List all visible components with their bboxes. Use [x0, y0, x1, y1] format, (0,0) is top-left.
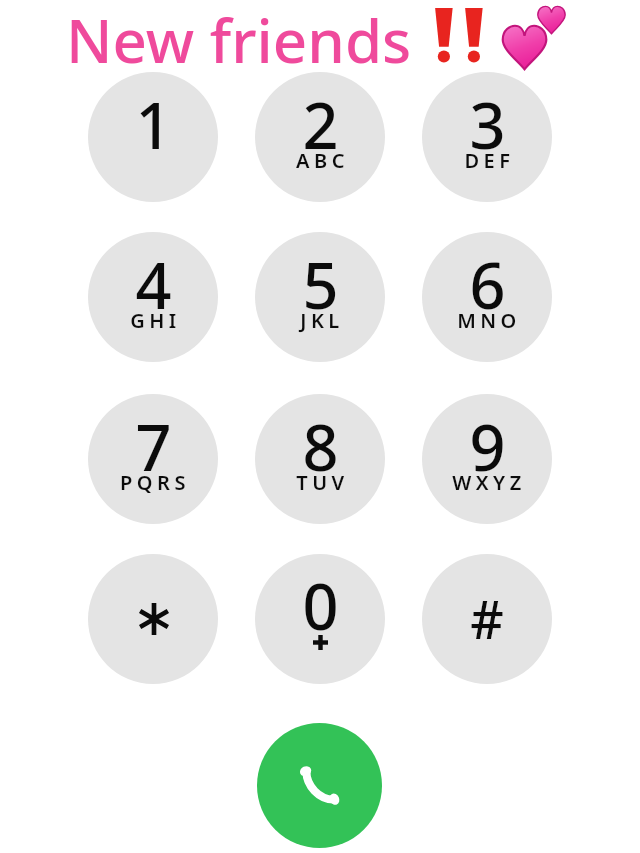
staticText: 1 — [135, 82, 172, 168]
button[interactable]: 6 — [422, 232, 552, 362]
button[interactable]: 4 — [88, 232, 218, 362]
button[interactable]: Star — [88, 554, 218, 684]
staticText: 5 — [302, 242, 339, 328]
staticText: 9 — [469, 404, 506, 490]
staticText: JKL — [300, 307, 344, 334]
staticText: DEF — [464, 147, 515, 174]
staticText: 7 — [135, 404, 172, 490]
staticText: GHI — [130, 307, 181, 334]
staticText: New friends — [66, 0, 412, 81]
button[interactable]: # — [422, 554, 552, 684]
button[interactable]: Call — [257, 723, 382, 848]
button[interactable]: 7 — [88, 394, 218, 524]
staticText: # — [470, 583, 504, 654]
button[interactable]: 9 — [422, 394, 552, 524]
button[interactable]: 5 — [255, 232, 385, 362]
button[interactable]: 1 — [88, 72, 218, 202]
staticText: 4 — [135, 242, 172, 328]
staticText: MNO — [457, 307, 521, 334]
staticText: PQRS — [120, 469, 190, 496]
staticText: ABC — [296, 147, 349, 174]
staticText: 8 — [302, 404, 339, 490]
staticText: WXYZ — [452, 469, 526, 496]
button[interactable]: 0 — [255, 554, 385, 684]
staticText: 0 — [302, 563, 339, 649]
staticText: 6 — [469, 242, 506, 328]
button[interactable]: 2 — [255, 72, 385, 202]
staticText: 3 — [469, 82, 506, 168]
button[interactable]: 8 — [255, 394, 385, 524]
staticText: 2 — [302, 82, 339, 168]
button[interactable]: 3 — [422, 72, 552, 202]
staticText: TUV — [296, 469, 349, 496]
